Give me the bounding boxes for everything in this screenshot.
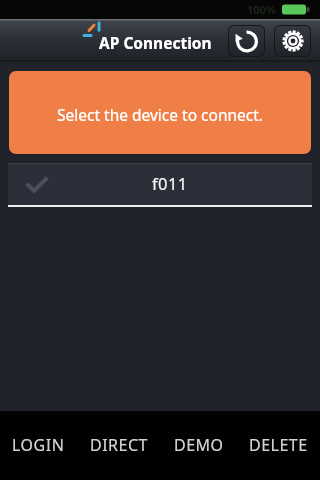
staticText: DELETE xyxy=(249,434,308,456)
button[interactable]: DEMO xyxy=(174,411,224,480)
button[interactable]: DIRECT xyxy=(90,411,148,480)
staticText: LOGIN xyxy=(12,434,65,456)
staticText: DEMO xyxy=(174,434,224,456)
button[interactable] xyxy=(275,26,310,56)
button[interactable]: DELETE xyxy=(249,411,308,480)
staticText: f011 xyxy=(152,172,188,194)
button[interactable]: Select the device to connect. xyxy=(9,71,311,154)
button[interactable]: LOGIN xyxy=(12,411,65,480)
button[interactable]: f011 xyxy=(8,163,312,205)
staticText: DIRECT xyxy=(90,434,148,456)
staticText: 100% xyxy=(247,2,276,17)
button[interactable] xyxy=(229,26,264,56)
staticText: Select the device to connect. xyxy=(57,104,263,125)
staticText: AP Connection xyxy=(99,32,212,53)
